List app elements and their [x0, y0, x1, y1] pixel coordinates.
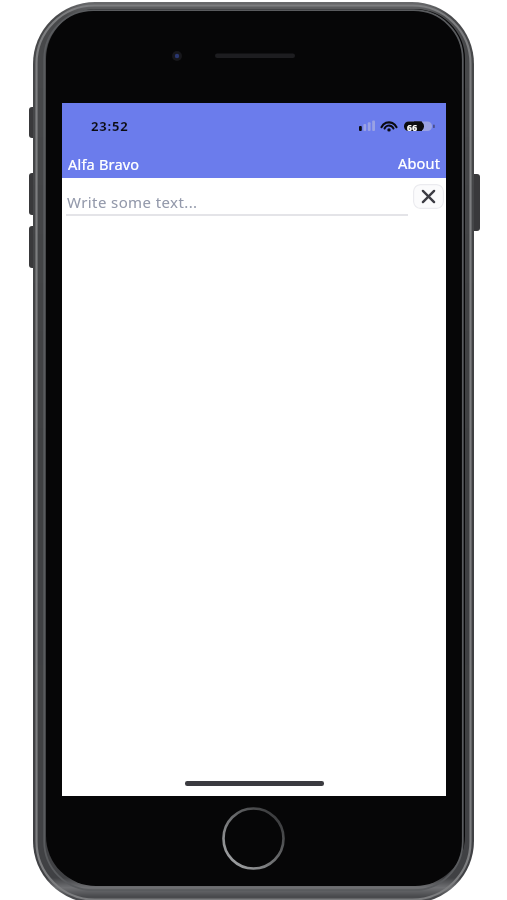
staticText: Write some text...: [67, 192, 198, 212]
button[interactable]: [413, 184, 444, 209]
staticText: 66: [407, 122, 418, 134]
staticText: 23:52: [91, 117, 129, 135]
staticText: Alfa Bravo: [68, 154, 140, 174]
staticText: About: [398, 153, 441, 173]
button[interactable]: About: [389, 151, 441, 175]
